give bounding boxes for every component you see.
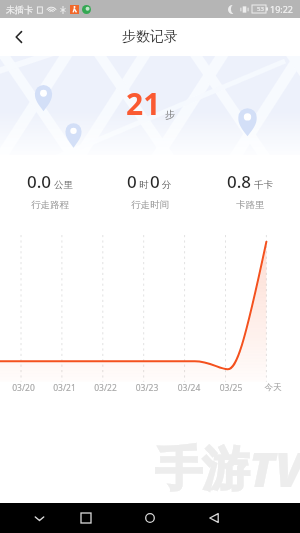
staticText: 0.8	[227, 170, 252, 193]
staticText: 公里	[54, 179, 73, 191]
button[interactable]: Back	[201, 505, 227, 531]
staticText: 时	[139, 179, 149, 191]
staticText: 今天	[252, 382, 294, 393]
staticText: 21	[126, 83, 161, 124]
staticText: 0.0	[27, 170, 52, 193]
button[interactable]: 0.0	[0, 166, 100, 215]
staticText: 行走时间	[131, 199, 169, 211]
staticText: TV	[249, 437, 300, 501]
staticText: 卡路里	[236, 199, 265, 211]
staticText: 未插卡	[6, 4, 33, 15]
button[interactable]: 0.8	[200, 166, 300, 215]
staticText: 03/22	[85, 382, 126, 394]
staticText: 19:22	[270, 3, 294, 15]
staticText: 步	[165, 108, 175, 121]
staticText: 53	[257, 5, 264, 13]
staticText: 03/20	[3, 382, 44, 394]
staticText: 03/21	[44, 382, 85, 394]
staticText: 行走路程	[31, 199, 69, 211]
staticText: 千卡	[254, 179, 273, 191]
staticText: 03/25	[210, 382, 252, 394]
staticText: 0	[150, 170, 160, 193]
staticText: 0	[127, 170, 137, 193]
staticText: 03/24	[168, 382, 210, 394]
button[interactable]: Hide keyboard	[26, 505, 52, 531]
staticText: 手游	[155, 440, 249, 499]
button[interactable]: Home	[137, 505, 163, 531]
staticText: 03/23	[126, 382, 168, 394]
staticText: 分	[162, 179, 172, 191]
button[interactable]: 0	[100, 166, 200, 215]
staticText: 步数记录	[122, 28, 178, 46]
button[interactable]: Back	[0, 18, 38, 56]
button[interactable]: Recent apps	[73, 505, 99, 531]
